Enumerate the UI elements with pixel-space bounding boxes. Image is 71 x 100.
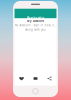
staticText: along with you bbox=[25, 28, 46, 31]
staticText: No Account - Sign in now, earn points bbox=[14, 23, 56, 27]
button[interactable]: Comment bbox=[33, 76, 38, 81]
button[interactable]: Favourite bbox=[19, 76, 24, 81]
staticText: My Account bbox=[27, 19, 44, 23]
button[interactable]: Membership bbox=[26, 16, 44, 20]
staticText: Membership bbox=[26, 16, 44, 20]
button[interactable]: Share bbox=[47, 76, 52, 81]
